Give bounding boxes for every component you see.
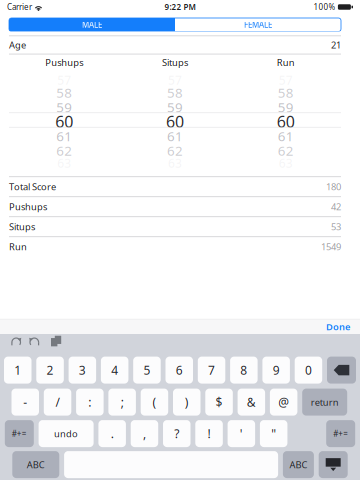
- button[interactable]: ;: [108, 389, 136, 416]
- staticText: Carrier: [7, 2, 32, 12]
- button[interactable]: FEMALE: [175, 18, 341, 31]
- staticText: 58: [278, 84, 294, 101]
- staticText: 0: [305, 362, 312, 378]
- button[interactable]: 0: [295, 357, 322, 384]
- staticText: 59: [56, 98, 72, 116]
- staticText: ': [240, 426, 243, 441]
- staticText: #+=: [12, 428, 27, 439]
- button[interactable]: Paste: [51, 336, 62, 347]
- button[interactable]: /: [44, 389, 71, 416]
- staticText: /: [55, 394, 59, 410]
- staticText: 180: [326, 181, 341, 193]
- button[interactable]: (: [141, 389, 168, 416]
- staticText: 58: [56, 84, 72, 101]
- staticText: 4: [111, 362, 118, 378]
- staticText: 60: [55, 111, 73, 132]
- button[interactable]: 1: [4, 357, 31, 384]
- staticText: ": [271, 426, 276, 441]
- button[interactable]: return: [302, 389, 347, 416]
- staticText: ABC: [289, 458, 307, 471]
- button[interactable]: 8: [230, 357, 258, 384]
- button[interactable]: #+=: [5, 420, 34, 447]
- button[interactable]: Done: [322, 318, 354, 336]
- staticText: ×: [340, 362, 346, 377]
- staticText: 57: [168, 72, 182, 88]
- staticText: 62: [56, 142, 72, 159]
- button[interactable]: Delete: [327, 357, 356, 384]
- button[interactable]: :: [76, 389, 104, 416]
- button[interactable]: @: [270, 389, 297, 416]
- button[interactable]: -: [11, 389, 39, 416]
- button[interactable]: Situps: [9, 217, 341, 236]
- staticText: 6: [176, 362, 183, 378]
- button[interactable]: Total Score: [9, 177, 341, 196]
- button[interactable]: 6: [165, 357, 193, 384]
- staticText: 60: [277, 111, 295, 132]
- button[interactable]: Pushups: [9, 197, 341, 216]
- staticText: Total Score: [9, 181, 56, 193]
- button[interactable]: ": [260, 420, 287, 447]
- staticText: 59: [167, 98, 183, 116]
- staticText: Pushups: [45, 56, 83, 69]
- button[interactable]: !: [195, 420, 223, 447]
- staticText: ABC: [27, 458, 45, 471]
- staticText: 63: [168, 155, 182, 171]
- staticText: 1549: [321, 241, 341, 253]
- staticText: !: [208, 426, 211, 441]
- staticText: ): [185, 394, 189, 410]
- staticText: 100%: [313, 2, 335, 12]
- staticText: 2: [47, 362, 54, 378]
- staticText: 62: [278, 142, 294, 159]
- staticText: 62: [167, 142, 183, 159]
- button[interactable]: 2: [36, 357, 64, 384]
- button[interactable]: Age: [9, 36, 341, 54]
- staticText: 60: [166, 111, 184, 132]
- staticText: Run: [277, 56, 295, 69]
- staticText: MALE: [82, 19, 102, 30]
- staticText: 7: [208, 362, 215, 378]
- button[interactable]: #+=: [326, 420, 355, 447]
- staticText: 21: [331, 39, 341, 51]
- staticText: 61: [56, 127, 72, 145]
- staticText: 61: [278, 127, 294, 145]
- button[interactable]: 4: [101, 357, 128, 384]
- button[interactable]: 9: [262, 357, 290, 384]
- staticText: 63: [57, 155, 71, 171]
- button[interactable]: 7: [198, 357, 225, 384]
- button[interactable]: ?: [163, 420, 190, 447]
- button[interactable]: ABC: [283, 451, 314, 478]
- staticText: (: [152, 394, 156, 410]
- button[interactable]: ,: [131, 420, 158, 447]
- button[interactable]: .: [98, 420, 126, 447]
- staticText: :: [88, 394, 91, 410]
- staticText: $: [216, 394, 223, 410]
- button[interactable]: $: [205, 389, 233, 416]
- staticText: ?: [174, 426, 179, 441]
- staticText: Age: [9, 39, 26, 51]
- staticText: 59: [278, 98, 294, 116]
- button[interactable]: 5: [133, 357, 161, 384]
- staticText: Situps: [9, 221, 35, 233]
- staticText: Situps: [162, 56, 188, 69]
- staticText: undo: [54, 427, 78, 440]
- staticText: 5: [143, 362, 150, 378]
- staticText: Done: [326, 321, 350, 333]
- staticText: Run: [9, 241, 27, 253]
- button[interactable]: 3: [69, 357, 96, 384]
- button[interactable]: MALE: [9, 18, 175, 31]
- button[interactable]: ': [228, 420, 255, 447]
- button[interactable]: Redo: [29, 336, 42, 347]
- button[interactable]: Hide keyboard: [319, 451, 348, 478]
- button[interactable]: ABC: [12, 451, 59, 478]
- button[interactable]: ): [173, 389, 200, 416]
- staticText: 61: [167, 127, 183, 145]
- button[interactable]: undo: [39, 420, 94, 447]
- button[interactable]: &: [238, 389, 265, 416]
- staticText: &: [247, 394, 256, 410]
- button[interactable]: Undo: [9, 336, 22, 347]
- button[interactable]: Run: [9, 237, 341, 256]
- staticText: 1: [14, 362, 21, 378]
